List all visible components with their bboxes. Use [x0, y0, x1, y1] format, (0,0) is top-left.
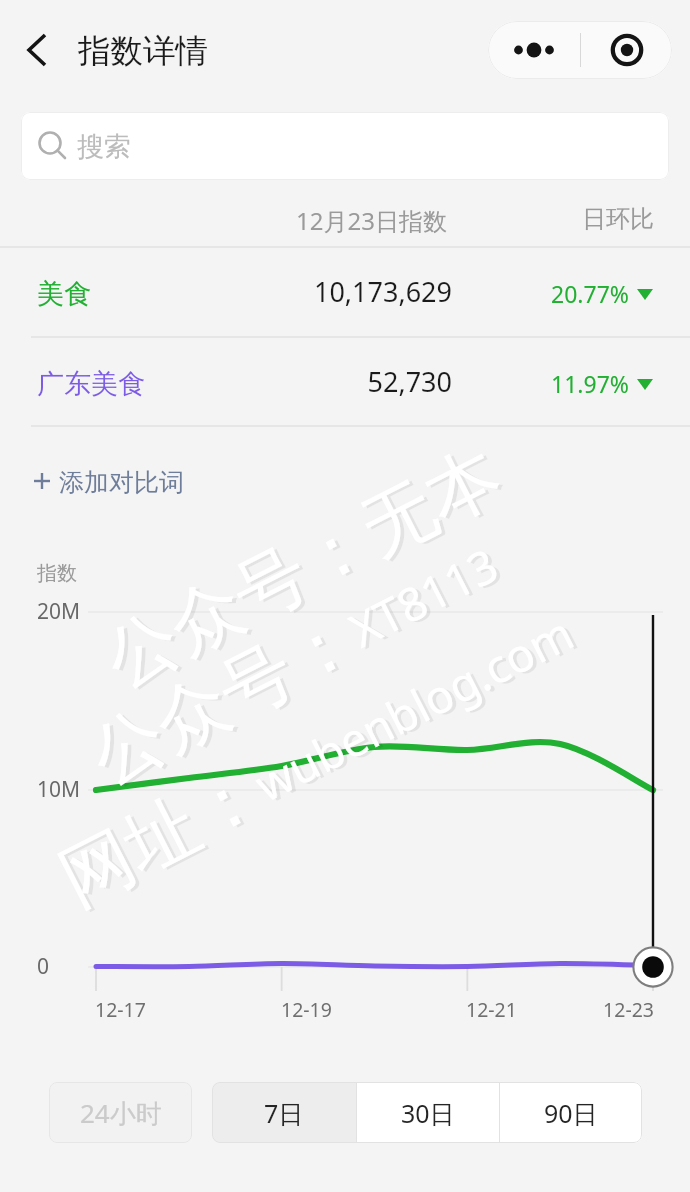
button[interactable]: 美食	[0, 247, 690, 336]
staticText: 12-19	[281, 996, 332, 1023]
staticText: 7日	[264, 1096, 304, 1130]
staticText: 12月23日指数	[296, 204, 447, 237]
button[interactable]: 广东美食	[0, 337, 690, 426]
staticText: 无本	[351, 431, 520, 578]
staticText: 搜索	[77, 130, 131, 164]
staticText: 11.97%	[551, 368, 629, 399]
staticText: 网址：	[45, 747, 279, 926]
button[interactable]: 更多	[488, 21, 580, 79]
button[interactable]: 24小时	[49, 1082, 192, 1143]
staticText: 90日	[544, 1096, 598, 1130]
staticText: 网址：	[49, 748, 283, 927]
staticText: 公众号：	[94, 496, 392, 708]
staticText: 0	[37, 952, 50, 981]
staticText: 指数详情	[78, 31, 208, 72]
button[interactable]: 30日	[357, 1082, 499, 1143]
staticText: wubenblog.com	[244, 601, 584, 815]
staticText: 12-23	[533, 996, 654, 1023]
button[interactable]: 搜索	[21, 112, 669, 180]
staticText: 美食	[37, 277, 91, 311]
staticText: 52,730	[200, 363, 452, 400]
staticText: 日环比	[582, 204, 654, 234]
staticText: 20.77%	[551, 278, 629, 309]
staticText: 公众号：	[90, 495, 388, 707]
button[interactable]: 90日	[500, 1082, 642, 1143]
button[interactable]: 添加对比词	[34, 460, 184, 502]
staticText: 12-21	[466, 996, 517, 1023]
staticText: 10M	[37, 775, 81, 804]
staticText: 公众号：	[80, 594, 378, 805]
button[interactable]: 关闭	[581, 21, 672, 79]
staticText: 公众号：	[76, 592, 374, 804]
staticText: XT8113	[343, 534, 512, 662]
staticText: 指数	[37, 561, 77, 586]
staticText: wubenblog.com	[248, 602, 588, 817]
staticText: 广东美食	[37, 367, 145, 401]
staticText: 20M	[37, 597, 81, 626]
staticText: 30日	[401, 1096, 455, 1130]
staticText: 添加对比词	[59, 467, 184, 498]
staticText: 10,173,629	[200, 273, 452, 310]
staticText: 无本	[347, 430, 516, 576]
button[interactable]: 7日	[212, 1082, 356, 1143]
staticText: XT8113	[339, 533, 508, 661]
staticText: 24小时	[80, 1095, 162, 1131]
staticText: 12-17	[95, 996, 146, 1023]
button[interactable]: 返回	[13, 26, 61, 74]
